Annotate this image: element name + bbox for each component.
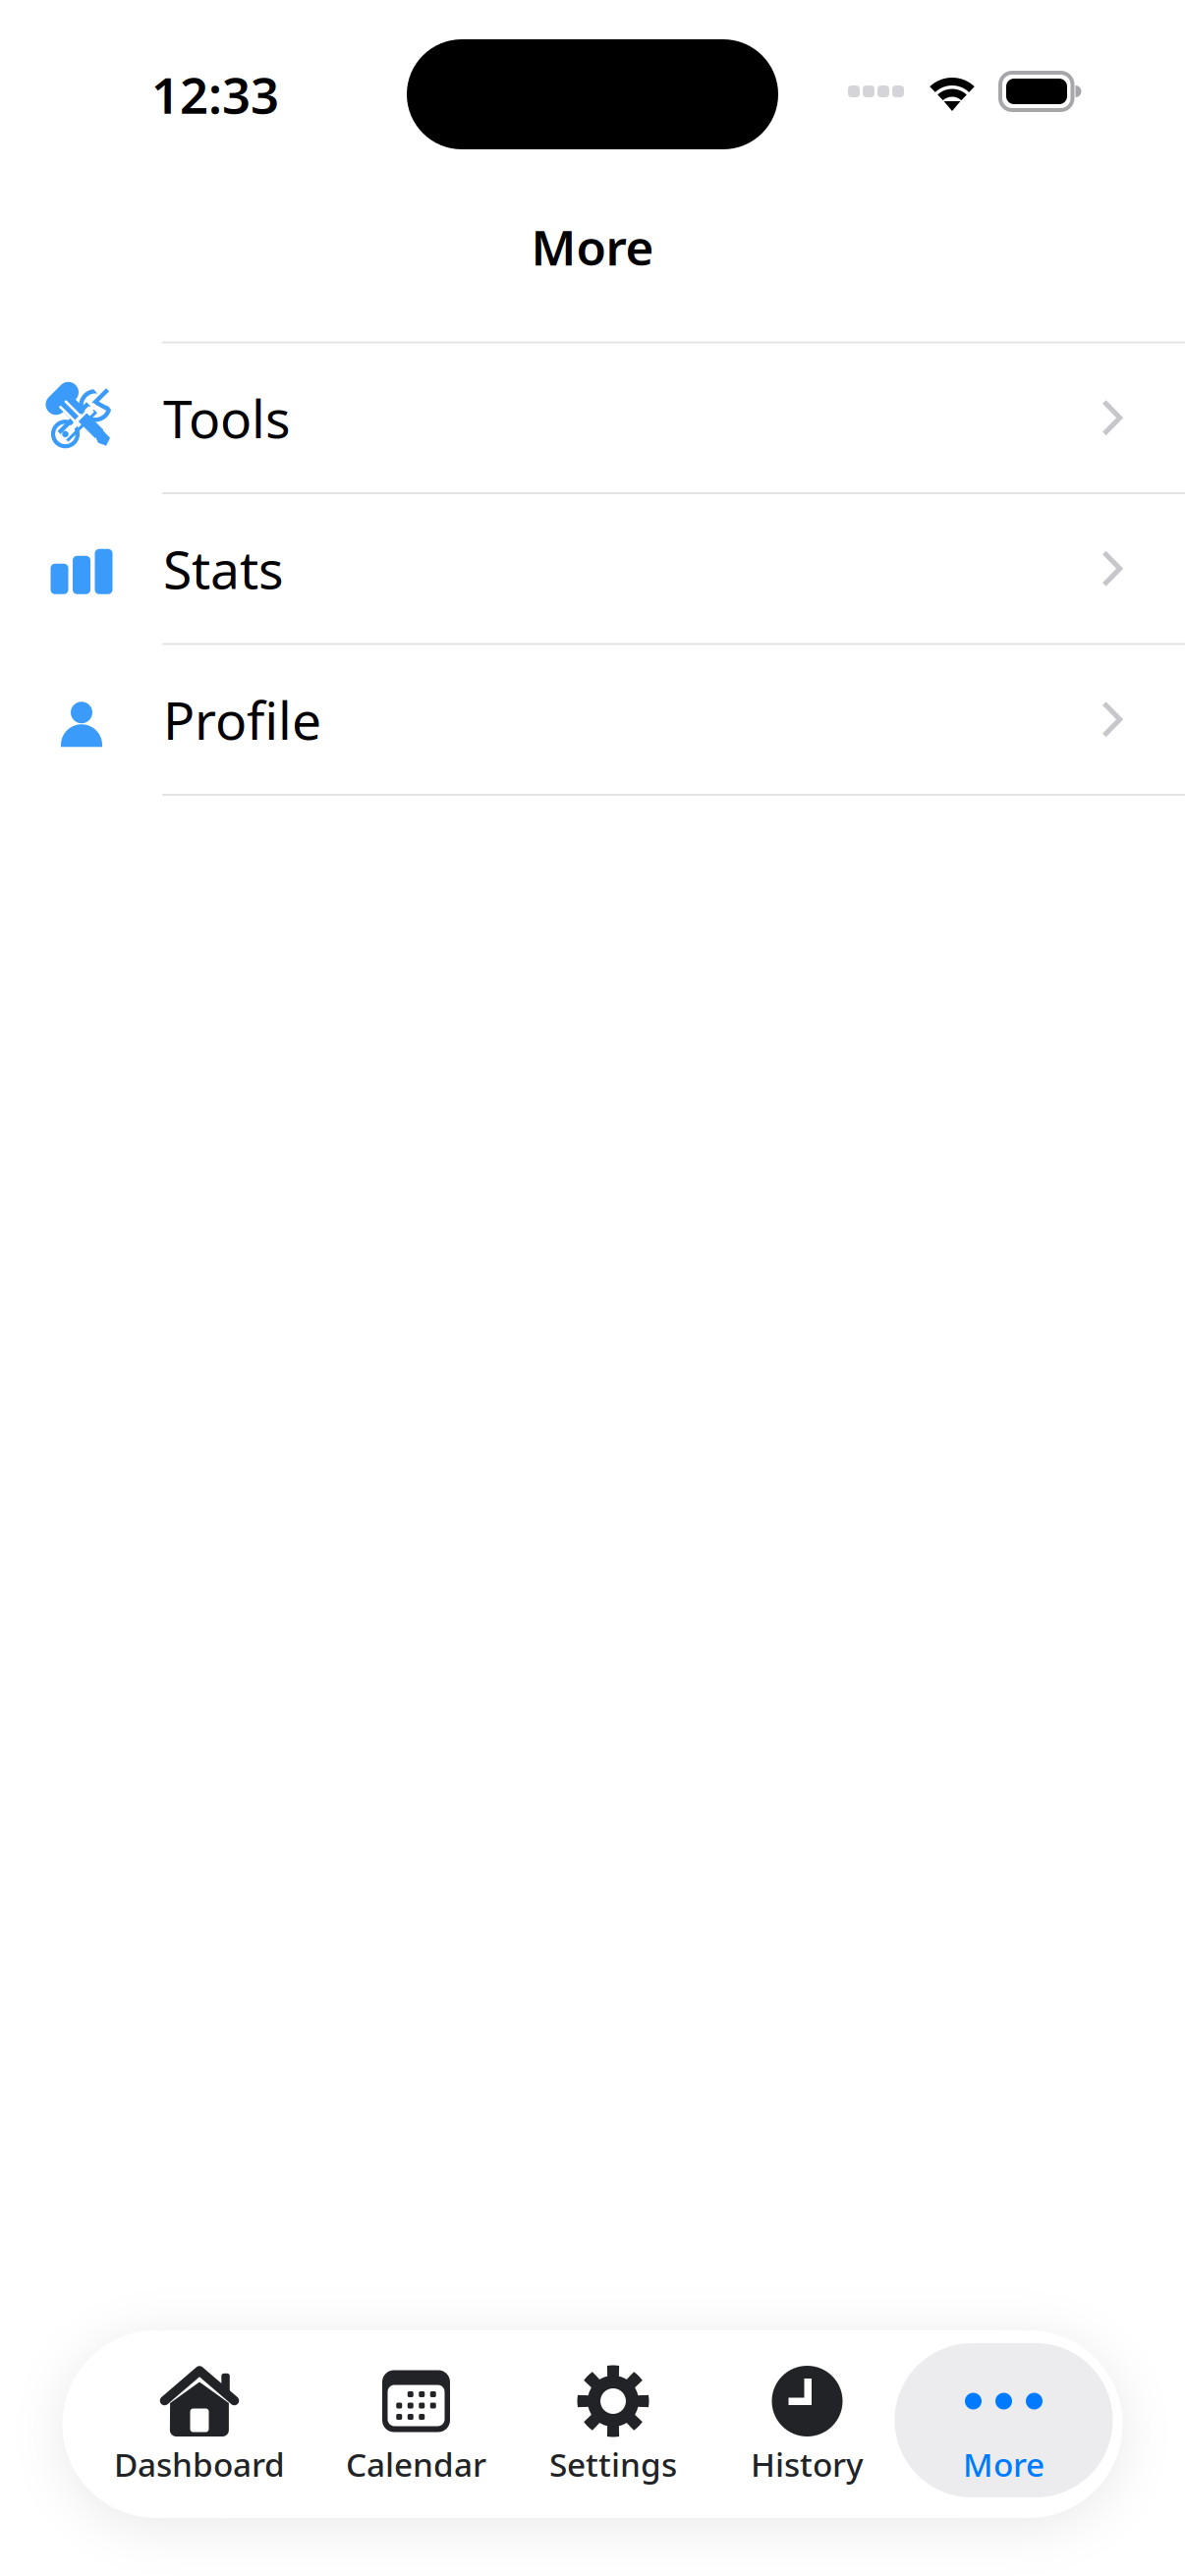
staticText: More xyxy=(963,2442,1044,2486)
button[interactable]: Profile xyxy=(0,645,1185,794)
staticText: Tools xyxy=(163,383,291,453)
button[interactable]: Settings xyxy=(515,2330,711,2518)
staticText: Dashboard xyxy=(114,2442,285,2486)
button[interactable]: Calendar xyxy=(328,2330,515,2518)
button[interactable]: Dashboard xyxy=(62,2330,328,2518)
staticText: More xyxy=(531,214,654,279)
staticText: History xyxy=(751,2442,864,2486)
button[interactable]: More xyxy=(900,2330,1123,2518)
button[interactable]: History xyxy=(711,2330,900,2518)
button[interactable]: Tools xyxy=(0,343,1185,492)
staticText: Profile xyxy=(163,685,321,754)
staticText: 12:33 xyxy=(151,61,279,127)
staticText: Calendar xyxy=(346,2442,486,2486)
staticText: Settings xyxy=(549,2442,677,2486)
staticText: Stats xyxy=(163,534,284,603)
button[interactable]: Stats xyxy=(0,494,1185,643)
